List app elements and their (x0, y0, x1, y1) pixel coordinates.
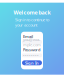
staticText: •••••••• (23, 53, 39, 58)
staticText: Welcome back (13, 9, 50, 16)
staticText: you@example.com (23, 37, 41, 47)
staticText: Sign in to continue to your account (15, 17, 49, 28)
staticText: Sign In (25, 60, 39, 65)
button[interactable]: Sign In (22, 60, 42, 65)
staticText: Password (23, 47, 40, 52)
staticText: Email (23, 34, 33, 39)
